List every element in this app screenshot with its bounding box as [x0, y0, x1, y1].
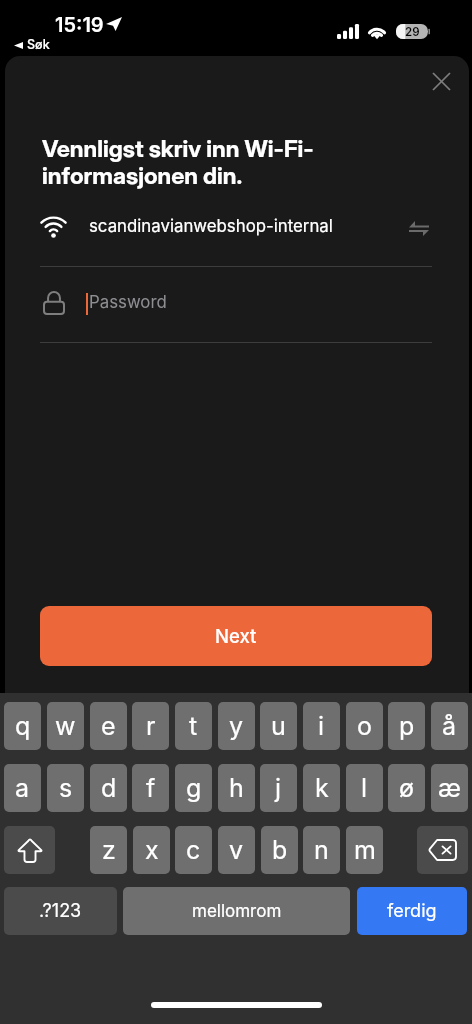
- button[interactable]: a: [4, 764, 41, 812]
- staticText: x: [145, 835, 159, 865]
- button[interactable]: l: [346, 764, 383, 812]
- staticText: g: [186, 773, 202, 803]
- staticText: Password: [89, 292, 167, 312]
- button[interactable]: ferdig: [357, 887, 467, 935]
- button[interactable]: scandinavianwebshop-internal: [35, 198, 438, 265]
- button[interactable]: f: [132, 764, 169, 812]
- button[interactable]: w: [47, 702, 84, 750]
- staticText: t: [189, 711, 198, 741]
- button[interactable]: t: [175, 702, 212, 750]
- button[interactable]: u: [260, 702, 297, 750]
- button[interactable]: o: [346, 702, 383, 750]
- button[interactable]: y: [218, 702, 255, 750]
- staticText: m: [354, 835, 376, 865]
- button[interactable]: k: [303, 764, 340, 812]
- staticText: a: [15, 773, 30, 803]
- button[interactable]: ø: [388, 764, 425, 812]
- staticText: ferdig: [387, 900, 437, 922]
- staticText: b: [272, 835, 288, 865]
- button[interactable]: d: [90, 764, 127, 812]
- staticText: æ: [438, 773, 461, 803]
- staticText: h: [229, 773, 244, 803]
- staticText: ø: [399, 773, 414, 803]
- staticText: 29: [405, 25, 420, 39]
- staticText: w: [55, 711, 76, 741]
- staticText: n: [314, 835, 329, 865]
- button[interactable]: n: [303, 826, 340, 874]
- staticText: q: [15, 711, 31, 741]
- button[interactable]: p: [388, 702, 425, 750]
- button[interactable]: å: [431, 702, 468, 750]
- staticText: e: [101, 711, 116, 741]
- staticText: Next: [215, 625, 257, 647]
- staticText: å: [442, 711, 457, 741]
- button[interactable]: Password: [35, 266, 438, 341]
- staticText: y: [229, 711, 244, 741]
- staticText: 15:19: [55, 13, 104, 37]
- button[interactable]: mellomrom: [123, 887, 350, 935]
- button[interactable]: x: [133, 826, 170, 874]
- button[interactable]: h: [218, 764, 255, 812]
- staticText: d: [101, 773, 117, 803]
- button[interactable]: i: [303, 702, 340, 750]
- button[interactable]: s: [47, 764, 84, 812]
- button[interactable]: r: [132, 702, 169, 750]
- button[interactable]: e: [90, 702, 127, 750]
- staticText: s: [59, 773, 73, 803]
- staticText: Søk: [27, 37, 50, 52]
- button[interactable]: Close: [419, 59, 463, 103]
- button[interactable]: c: [175, 826, 212, 874]
- button[interactable]: q: [4, 702, 41, 750]
- button[interactable]: j: [260, 764, 297, 812]
- button[interactable]: b: [261, 826, 298, 874]
- staticText: k: [315, 773, 329, 803]
- staticText: p: [399, 711, 415, 741]
- staticText: z: [102, 835, 116, 865]
- button[interactable]: z: [90, 826, 127, 874]
- button[interactable]: v: [218, 826, 255, 874]
- button[interactable]: æ: [431, 764, 468, 812]
- staticText: j: [275, 773, 282, 803]
- staticText: u: [271, 711, 286, 741]
- button[interactable]: m: [346, 826, 383, 874]
- staticText: Vennligst skriv inn Wi-Fi- informasjonen…: [42, 134, 442, 189]
- staticText: scandinavianwebshop-internal: [89, 216, 333, 236]
- button[interactable]: Next: [40, 606, 432, 666]
- staticText: l: [361, 773, 368, 803]
- staticText: r: [146, 711, 156, 741]
- staticText: f: [146, 773, 156, 803]
- staticText: v: [229, 835, 244, 865]
- staticText: mellomrom: [192, 901, 282, 922]
- button[interactable]: g: [175, 764, 212, 812]
- button[interactable]: .?123: [4, 887, 117, 935]
- staticText: i: [318, 711, 325, 741]
- staticText: c: [186, 835, 201, 865]
- button[interactable]: Shift: [4, 826, 55, 874]
- staticText: o: [357, 711, 372, 741]
- staticText: .?123: [39, 900, 82, 922]
- button[interactable]: Backspace: [417, 826, 468, 874]
